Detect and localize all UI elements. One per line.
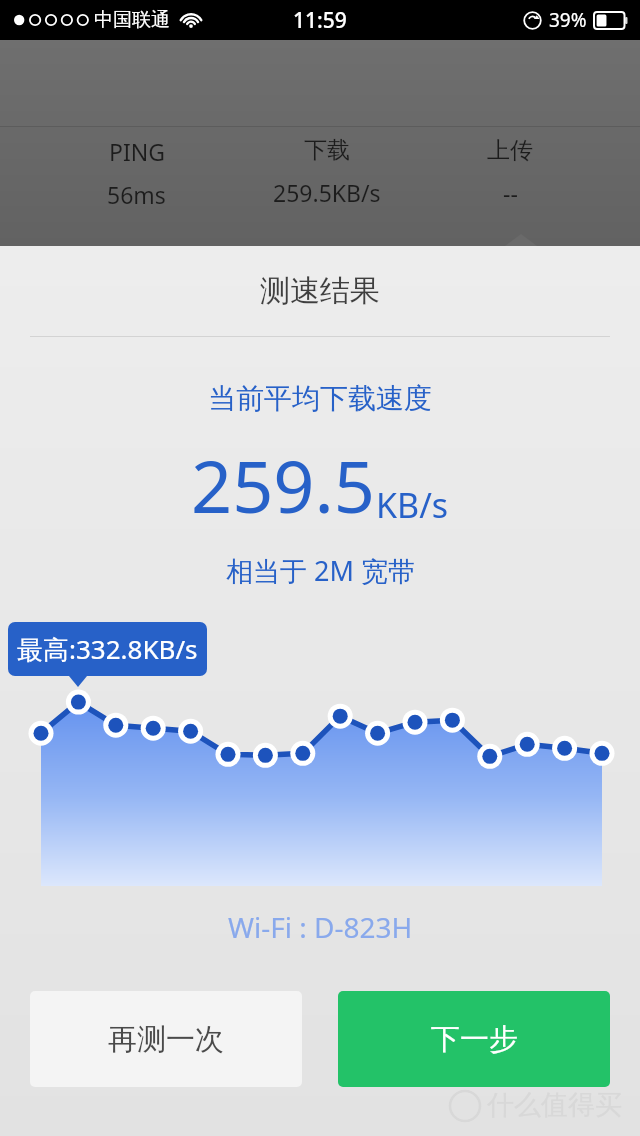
staticText: 259.5 <box>191 436 376 534</box>
staticText: -- <box>503 177 518 208</box>
staticText: KB/s <box>376 482 449 528</box>
staticText: PING <box>109 136 165 167</box>
staticText: 259.5KB/s <box>273 177 381 208</box>
staticText: Wi-Fi : D-823H <box>228 908 413 946</box>
button[interactable]: 下一步 <box>338 991 610 1087</box>
staticText: 中国联通 <box>94 8 170 32</box>
staticText: 最高:332.8KB/s <box>17 631 198 667</box>
staticText: 相当于 2M 宽带 <box>226 552 415 589</box>
staticText: 下一步 <box>431 1021 518 1058</box>
staticText: 11:59 <box>293 6 347 35</box>
staticText: 当前平均下载速度 <box>208 381 432 416</box>
staticText: 56ms <box>107 179 166 210</box>
staticText: 39% <box>549 7 587 33</box>
staticText: 测速结果 <box>260 272 380 310</box>
staticText: 什么值得买 <box>487 1088 622 1122</box>
staticText: 下载 <box>304 136 350 165</box>
button[interactable]: 再测一次 <box>30 991 302 1087</box>
staticText: 再测一次 <box>108 1021 224 1058</box>
staticText: 上传 <box>487 136 533 165</box>
